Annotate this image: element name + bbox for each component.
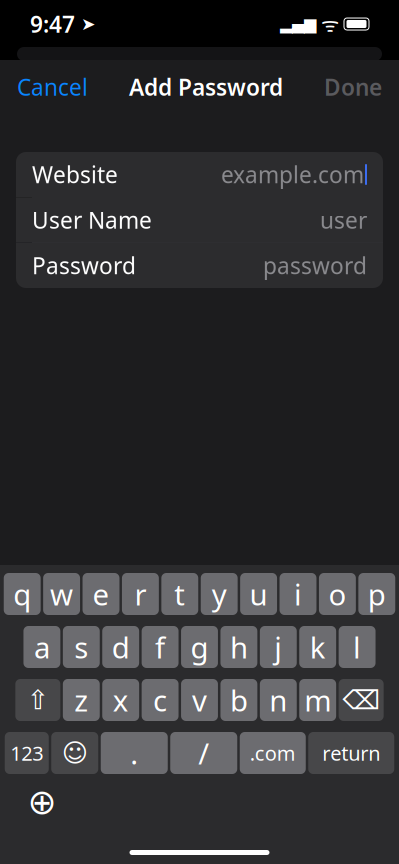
staticText: Cancel bbox=[17, 72, 88, 102]
button[interactable]: j bbox=[260, 626, 297, 668]
staticText: j bbox=[274, 627, 282, 666]
staticText: 9:47 bbox=[30, 9, 75, 39]
staticText: return bbox=[322, 740, 380, 766]
button[interactable]: b bbox=[220, 679, 257, 721]
button[interactable]: k bbox=[299, 626, 336, 668]
staticText: f bbox=[155, 627, 165, 666]
button[interactable]: y bbox=[201, 573, 238, 615]
staticText: ➤ bbox=[75, 14, 96, 34]
button[interactable]: c bbox=[142, 679, 179, 721]
button[interactable]: l bbox=[339, 626, 375, 668]
button[interactable]: n bbox=[260, 679, 297, 721]
staticText: y bbox=[212, 574, 227, 613]
button[interactable]: / bbox=[170, 732, 237, 774]
staticText: .com bbox=[250, 740, 296, 766]
button[interactable]: g bbox=[181, 626, 218, 668]
button[interactable]: t bbox=[161, 573, 198, 615]
staticText: ⇧ bbox=[27, 685, 49, 715]
button[interactable]: o bbox=[319, 573, 356, 615]
staticText: Done bbox=[324, 72, 382, 102]
staticText: ⌫ bbox=[342, 685, 380, 715]
button[interactable]: ⌫ bbox=[339, 679, 384, 721]
button[interactable]: f bbox=[142, 626, 179, 668]
staticText: m bbox=[304, 680, 331, 719]
staticText: c bbox=[153, 680, 167, 719]
staticText: User Name bbox=[32, 205, 152, 235]
button[interactable]: ☺ bbox=[51, 732, 98, 774]
staticText: Add Password bbox=[129, 72, 283, 102]
button[interactable]: e bbox=[83, 573, 119, 615]
staticText: v bbox=[192, 680, 207, 719]
staticText: k bbox=[310, 627, 326, 666]
staticText: u bbox=[250, 574, 268, 613]
staticText: z bbox=[74, 680, 88, 719]
staticText: a bbox=[34, 627, 50, 666]
staticText: g bbox=[190, 627, 208, 666]
button[interactable]: 123 bbox=[5, 732, 49, 774]
staticText: s bbox=[74, 627, 88, 666]
button[interactable]: p bbox=[358, 573, 395, 615]
button[interactable]: Cancel bbox=[17, 72, 88, 102]
button[interactable]: m bbox=[299, 679, 336, 721]
staticText: ⊕ bbox=[27, 782, 56, 822]
button[interactable]: ⇧ bbox=[15, 679, 60, 721]
button[interactable]: a bbox=[23, 626, 60, 668]
button[interactable]: s bbox=[63, 626, 100, 668]
button[interactable]: Website bbox=[16, 152, 383, 197]
staticText: r bbox=[134, 574, 146, 613]
staticText: h bbox=[230, 627, 248, 666]
staticText: user bbox=[320, 205, 367, 235]
staticText: ▂▄▆ bbox=[280, 15, 316, 33]
staticText: / bbox=[198, 733, 209, 772]
button[interactable]: return bbox=[308, 732, 394, 774]
staticText: Website bbox=[32, 159, 118, 189]
button[interactable]: .com bbox=[240, 732, 306, 774]
button[interactable]: r bbox=[122, 573, 159, 615]
staticText: n bbox=[269, 680, 287, 719]
button[interactable]: x bbox=[102, 679, 139, 721]
button[interactable]: z bbox=[63, 679, 100, 721]
button[interactable]: d bbox=[102, 626, 139, 668]
button[interactable]: q bbox=[4, 573, 41, 615]
button[interactable]: h bbox=[220, 626, 257, 668]
staticText: x bbox=[113, 680, 129, 719]
button[interactable]: Password bbox=[16, 243, 383, 288]
staticText: ᯤ bbox=[316, 11, 344, 37]
button[interactable]: w bbox=[43, 573, 80, 615]
staticText: . bbox=[130, 733, 138, 772]
button[interactable]: u bbox=[240, 573, 277, 615]
staticText: w bbox=[50, 574, 73, 613]
button[interactable]: v bbox=[181, 679, 218, 721]
staticText: ☺ bbox=[62, 739, 88, 767]
button[interactable]: Next keyboard bbox=[20, 782, 64, 822]
staticText: i bbox=[294, 574, 302, 613]
staticText: l bbox=[353, 627, 361, 666]
staticText: example.com bbox=[221, 159, 364, 189]
staticText: p bbox=[368, 574, 386, 613]
staticText: 123 bbox=[10, 740, 43, 766]
staticText: o bbox=[328, 574, 346, 613]
staticText: Password bbox=[32, 250, 136, 280]
staticText: password bbox=[263, 250, 367, 280]
button[interactable]: User Name bbox=[16, 197, 383, 242]
staticText: d bbox=[112, 627, 130, 666]
staticText: t bbox=[174, 574, 185, 613]
button[interactable]: i bbox=[280, 573, 316, 615]
button[interactable]: Done bbox=[324, 72, 382, 102]
staticText: b bbox=[230, 680, 248, 719]
staticText: q bbox=[13, 574, 31, 613]
button[interactable]: . bbox=[101, 732, 168, 774]
staticText: e bbox=[92, 574, 109, 613]
